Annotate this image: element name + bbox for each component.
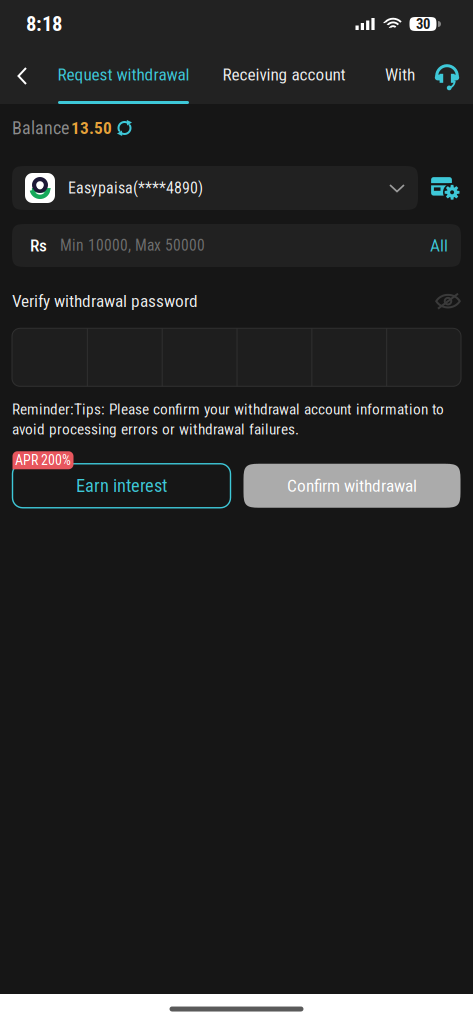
- staticText: Balance: [12, 117, 69, 139]
- button[interactable]: Customer service: [424, 48, 470, 104]
- staticText: 13.50: [71, 118, 112, 138]
- staticText: Confirm withdrawal: [287, 476, 417, 496]
- button[interactable]: Receiving account: [220, 48, 347, 104]
- staticText: Earn interest: [76, 475, 167, 497]
- staticText: avoid processing errors or withdrawal fa…: [12, 420, 299, 438]
- button[interactable]: Back: [1, 48, 44, 104]
- staticText: 30: [416, 15, 430, 33]
- staticText: All: [430, 235, 448, 256]
- button[interactable]: Manage cards: [429, 166, 461, 210]
- staticText: Reminder:Tips: Please confirm your withd…: [12, 400, 444, 418]
- button[interactable]: Easypaisa(****4890): [12, 166, 418, 210]
- staticText: Min 10000, Max 50000: [60, 236, 205, 255]
- button[interactable]: Earn interest: [12, 464, 230, 508]
- staticText: 8:18: [26, 12, 62, 36]
- staticText: APR 200%: [15, 452, 71, 468]
- staticText: Verify withdrawal password: [12, 291, 198, 311]
- staticText: Easypaisa(****4890): [68, 179, 203, 197]
- staticText: With: [385, 64, 415, 85]
- button[interactable]: With: [383, 48, 417, 104]
- button[interactable]: Confirm withdrawal: [243, 464, 460, 508]
- button[interactable]: Balance: [0, 104, 473, 152]
- button[interactable]: Request withdrawal: [56, 48, 191, 104]
- button[interactable]: Show password: [435, 292, 461, 310]
- staticText: Rs: [30, 235, 47, 256]
- button[interactable]: All: [430, 235, 461, 256]
- staticText: Receiving account: [222, 64, 345, 85]
- staticText: Request withdrawal: [57, 64, 189, 85]
